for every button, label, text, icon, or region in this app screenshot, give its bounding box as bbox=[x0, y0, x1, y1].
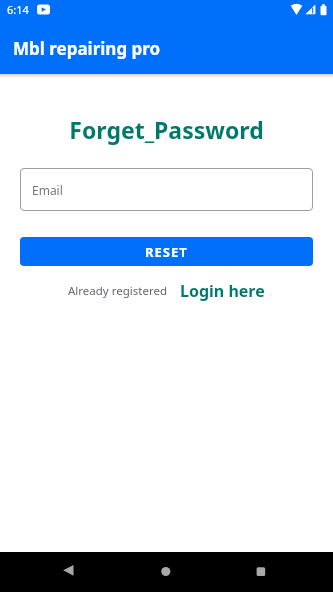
staticText: Forget_Password bbox=[0, 114, 333, 145]
staticText: Mbl repairing pro bbox=[13, 37, 161, 60]
staticText: Login here bbox=[180, 280, 265, 302]
button[interactable] bbox=[0, 552, 111, 592]
button[interactable]: Login here bbox=[180, 280, 265, 302]
button[interactable] bbox=[111, 552, 222, 592]
staticText: 6:14 bbox=[7, 2, 29, 17]
staticText: Already registered bbox=[68, 283, 167, 299]
button[interactable] bbox=[222, 552, 333, 592]
staticText: Email bbox=[32, 182, 63, 198]
staticText: RESET bbox=[145, 243, 188, 261]
button[interactable]: RESET bbox=[20, 237, 313, 266]
button[interactable]: Email bbox=[20, 168, 313, 211]
